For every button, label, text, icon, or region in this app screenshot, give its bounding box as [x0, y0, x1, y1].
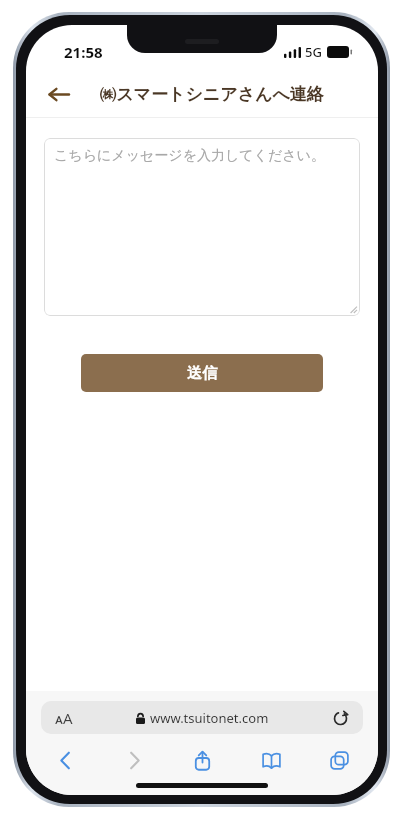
button[interactable]: こちらにメッセージを入力してください。 — [44, 138, 360, 316]
button[interactable]: Share — [185, 743, 219, 777]
staticText: ᴀA — [55, 708, 73, 728]
button[interactable]: Back — [38, 74, 78, 114]
staticText: 送信 — [187, 364, 217, 383]
staticText: ㈱スマートシニアさんへ連絡 — [99, 84, 324, 105]
button[interactable]: Back — [48, 743, 82, 777]
button[interactable]: Bookmarks — [254, 743, 288, 777]
staticText: 21:58 — [64, 42, 103, 62]
staticText: www.tsuitonet.com — [150, 709, 269, 727]
button[interactable]: Reload — [327, 705, 353, 731]
button[interactable]: 送信 — [81, 354, 323, 392]
button[interactable]: Tabs — [322, 743, 356, 777]
button[interactable]: ᴀA — [41, 701, 363, 734]
staticText: こちらにメッセージを入力してください。 — [54, 147, 325, 165]
button[interactable]: Forward — [117, 743, 151, 777]
staticText: 5G — [305, 43, 322, 61]
